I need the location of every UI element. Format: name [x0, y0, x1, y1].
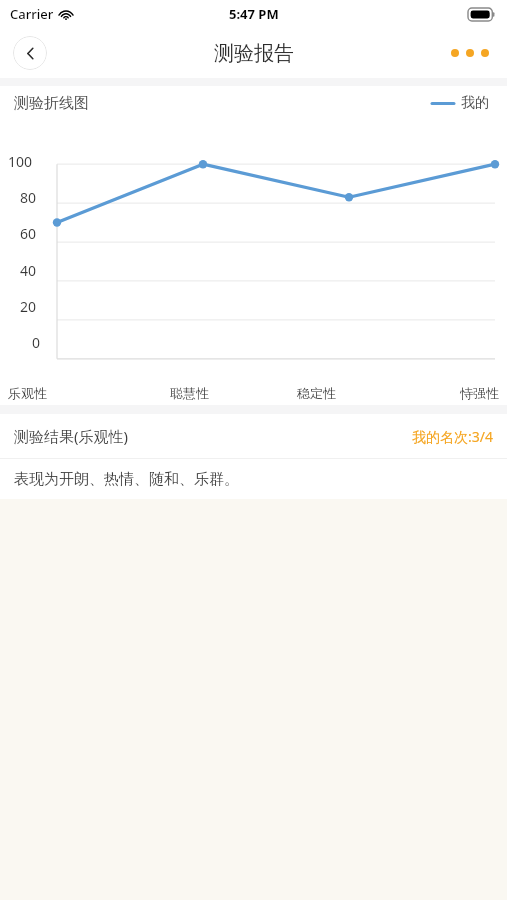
- button[interactable]: More options: [447, 41, 493, 65]
- staticText: 我的: [461, 94, 489, 112]
- staticText: 测验报告: [214, 41, 294, 66]
- staticText: 20: [20, 297, 37, 316]
- staticText: 聪慧性: [170, 385, 209, 401]
- staticText: 60: [20, 224, 37, 243]
- staticText: 表现为开朗、热情、随和、乐群。: [14, 470, 239, 489]
- staticText: 80: [20, 188, 37, 207]
- staticText: 100: [8, 152, 33, 171]
- staticText: 稳定性: [297, 385, 336, 401]
- button[interactable]: Back: [13, 36, 47, 70]
- staticText: 测验折线图: [14, 94, 89, 113]
- staticText: 0: [32, 333, 41, 352]
- staticText: 我的名次:3/4: [412, 427, 493, 446]
- staticText: 乐观性: [8, 385, 47, 401]
- staticText: 5:47 PM: [229, 5, 279, 23]
- staticText: 40: [20, 261, 37, 280]
- staticText: Carrier: [10, 5, 54, 23]
- staticText: 恃强性: [460, 385, 499, 401]
- staticText: 测验结果(乐观性): [14, 426, 129, 446]
- button[interactable]: 测验结果(乐观性): [0, 414, 507, 458]
